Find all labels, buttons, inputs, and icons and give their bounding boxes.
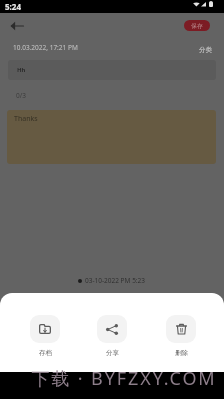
staticText: 分类 (199, 46, 212, 54)
staticText: 存档 (39, 349, 52, 357)
button[interactable]: 保存 (184, 20, 210, 31)
staticText: 03-10-2022 PM 5:23 (85, 276, 146, 285)
button[interactable]: 分享 (97, 315, 127, 357)
staticText: Hh (17, 66, 26, 74)
staticText: 删除 (175, 349, 188, 357)
button[interactable]: 分类 (199, 46, 224, 54)
staticText: 10.03.2022, 17:21 PM (13, 43, 78, 52)
button[interactable]: Back (5, 14, 29, 38)
staticText: 下载 · BYFZXY.COM (31, 366, 217, 391)
staticText: Thanks (14, 114, 38, 124)
staticText: 5:24 (5, 1, 21, 12)
staticText: 0/3 (16, 91, 26, 100)
staticText: 分享 (106, 349, 119, 357)
button[interactable]: 存档 (30, 315, 60, 357)
staticText: 保存 (191, 22, 203, 30)
button[interactable]: 删除 (166, 315, 196, 357)
